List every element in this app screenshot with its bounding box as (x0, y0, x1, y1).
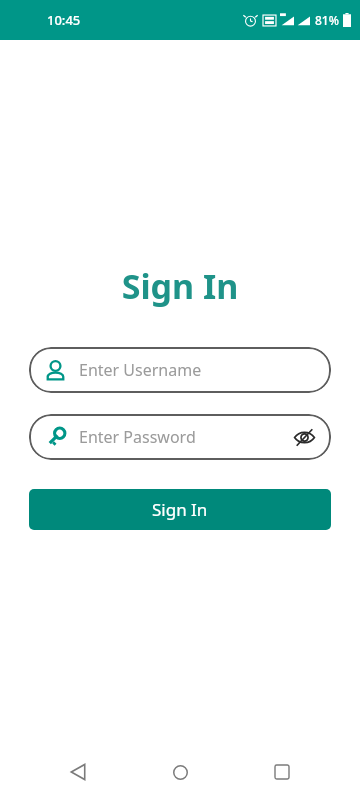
button[interactable]: Back (54, 748, 102, 796)
staticText: Sign In (152, 498, 208, 521)
button[interactable]: Home (156, 748, 204, 796)
button[interactable]: Recent apps (258, 748, 306, 796)
staticText: Enter Username (79, 359, 202, 381)
staticText: Enter Password (79, 426, 196, 448)
button[interactable]: Enter Username (29, 347, 331, 393)
button[interactable]: Sign In (29, 489, 331, 530)
staticText: 10:45 (47, 11, 81, 29)
staticText: 81% (315, 12, 339, 28)
button[interactable]: Enter Password (29, 414, 331, 460)
staticText: Sign In (0, 263, 360, 309)
button[interactable]: Show password (287, 420, 321, 454)
